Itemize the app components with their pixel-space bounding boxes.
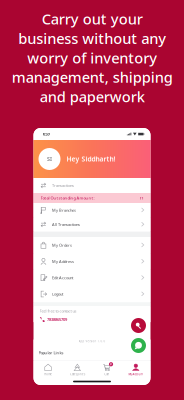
button[interactable]: Categories (63, 361, 92, 378)
staticText: My Address (52, 259, 74, 264)
staticText: My Orders (52, 242, 72, 248)
staticText: Carry out your business without any worr… (11, 9, 172, 106)
button[interactable]: My Address (33, 253, 150, 270)
staticText: Hey Siddharth! (66, 155, 115, 163)
button[interactable]: 0 (92, 361, 121, 378)
staticText: Logout (52, 291, 63, 297)
staticText: Categories (70, 372, 85, 376)
button[interactable]: Search (131, 318, 146, 333)
button[interactable]: My Branches (33, 203, 150, 217)
button[interactable]: Logout (33, 286, 150, 302)
staticText: Home (44, 372, 52, 376)
button[interactable]: 7838865709 (39, 317, 67, 322)
staticText: Transactions (52, 183, 74, 188)
staticText: Edit Account (52, 275, 73, 280)
staticText: Total Outstanding Amount: (40, 195, 94, 201)
staticText: Popular Links (38, 350, 63, 355)
staticText: 4:59 (42, 131, 49, 137)
staticText: App Version 1.0.0 (78, 339, 105, 343)
staticText: 7838865709 (47, 317, 67, 322)
staticText: My Branches (52, 207, 76, 213)
button[interactable]: My Account (121, 361, 150, 378)
button[interactable]: Chat on WhatsApp (131, 338, 146, 353)
button[interactable]: Home (33, 361, 63, 378)
staticText: SI (47, 155, 52, 163)
button[interactable]: All Transactions (33, 217, 150, 232)
staticText: My Account (128, 372, 143, 376)
staticText: ₹1 (139, 195, 143, 201)
staticText: All Transactions (52, 222, 80, 227)
button[interactable]: My Orders (33, 237, 150, 253)
button[interactable]: Edit Account (33, 270, 150, 286)
staticText: 0 (110, 362, 112, 366)
staticText: Cart (104, 372, 109, 376)
staticText: Feel free to contact us (39, 308, 76, 313)
